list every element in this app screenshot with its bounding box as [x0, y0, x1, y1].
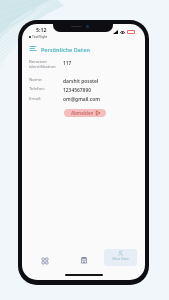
staticText: 5:12: [36, 26, 47, 33]
staticText: Persönliche Daten: [41, 46, 90, 53]
staticText: Meine Daten: [112, 257, 129, 261]
staticText: Abmelden: [71, 110, 94, 116]
staticText: Benutzer identifikation: [29, 58, 56, 69]
button[interactable]: Shop: [73, 252, 95, 268]
staticText: 1234567890: [63, 87, 91, 94]
button[interactable]: Scan: [34, 253, 56, 269]
staticText: om@gmail.com: [63, 96, 101, 103]
button[interactable]: Abmelden: [64, 109, 106, 117]
staticText: Name:: [29, 76, 43, 82]
staticText: Telefon:: [29, 85, 45, 91]
staticText: Email:: [29, 95, 42, 101]
staticText: darshit posstel: [63, 78, 99, 85]
button[interactable]: Open navigation menu: [26, 42, 40, 54]
staticText: 117: [63, 60, 72, 67]
staticText: TestFlight: [32, 34, 48, 39]
button[interactable]: Meine Daten: [104, 249, 137, 266]
